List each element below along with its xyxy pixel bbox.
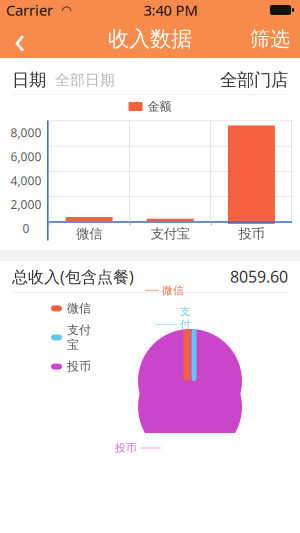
staticText: 支付宝 [151,226,190,242]
staticText: 8059.60 [230,266,288,287]
staticText: 投币 [67,359,91,374]
staticText: 4,000 [10,172,41,188]
staticText: ◠ [61,3,71,17]
staticText: 筛选 [250,27,290,51]
staticText: 全部日期 [55,71,115,89]
staticText: 3:40 PM [143,0,197,20]
staticText: ‹ [14,14,26,64]
staticText: 投币 [115,441,137,454]
staticText: 支付宝 [67,323,91,352]
staticText: 日期 [12,69,46,91]
staticText: 6,000 [10,149,41,164]
staticText: 总收入(包含点餐) [12,266,134,287]
staticText: 微信 [67,301,91,316]
staticText: 投币 [238,226,264,242]
button[interactable]: Back [0,20,40,58]
button[interactable]: 筛选 [240,20,300,58]
staticText: 微信 [76,226,102,242]
staticText: 0 [22,220,29,236]
staticText: 2,000 [10,196,41,212]
staticText: Carrier [6,0,53,20]
staticText: 收入数据 [108,26,192,52]
staticText: 支付宝 [180,305,191,344]
button[interactable]: 全部门店 [220,66,300,94]
staticText: 金额 [147,99,171,114]
staticText: 8,000 [10,125,41,141]
button[interactable]: 日期 [0,66,115,94]
staticText: 微信 [162,284,184,297]
staticText: 全部门店 [220,69,288,91]
